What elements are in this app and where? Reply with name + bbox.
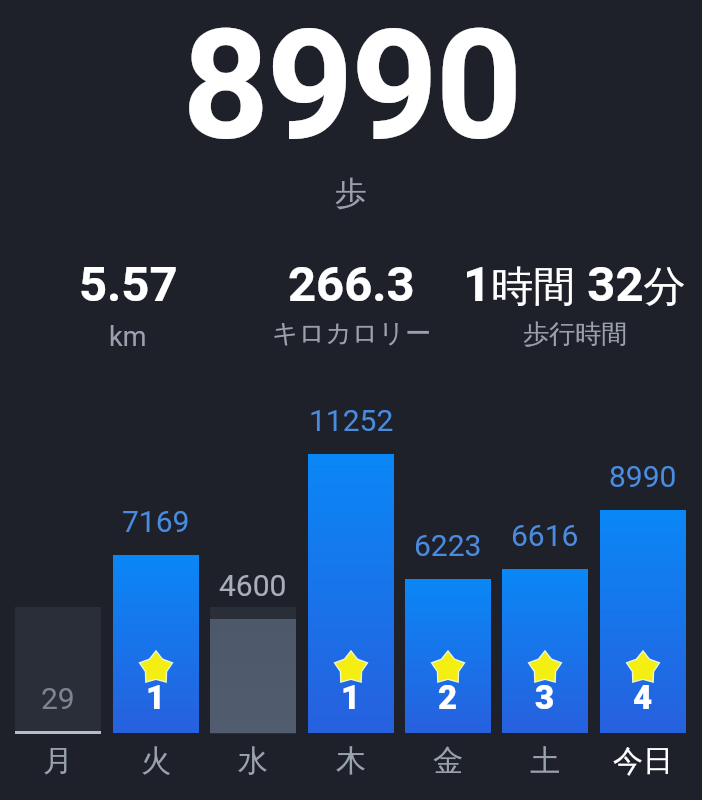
button[interactable] (600, 510, 686, 733)
staticText: 歩行時間 (523, 318, 627, 351)
staticText: 29 (41, 681, 75, 716)
button[interactable] (502, 569, 588, 733)
staticText: 8990 (182, 0, 520, 167)
button[interactable] (210, 607, 296, 734)
button[interactable]: 月 (15, 742, 101, 788)
button[interactable]: 5.57 (16, 256, 240, 314)
staticText: 2 (438, 678, 458, 717)
button[interactable]: 火 (113, 742, 199, 788)
staticText: 8990 (609, 459, 677, 494)
staticText: 7169 (122, 504, 190, 539)
staticText: 1時間 32分 (463, 256, 686, 314)
staticText: 1 (146, 678, 166, 717)
staticText: キロカロリー (272, 317, 432, 350)
button[interactable]: 8990 (0, 0, 702, 167)
staticText: 水 (238, 742, 268, 780)
staticText: 6223 (414, 528, 482, 563)
staticText: 3 (535, 678, 555, 717)
button[interactable]: 土 (502, 742, 588, 788)
staticText: 火 (141, 742, 171, 780)
staticText: 11252 (309, 403, 394, 438)
button[interactable]: 266.3 (240, 256, 463, 314)
staticText: km (109, 321, 147, 353)
staticText: 6616 (511, 518, 579, 553)
button[interactable]: 1時間 32分 (463, 256, 686, 314)
button[interactable]: 金 (405, 742, 491, 788)
button[interactable] (113, 555, 199, 733)
staticText: 266.3 (288, 256, 415, 313)
staticText: 金 (433, 742, 463, 780)
staticText: 4600 (219, 568, 287, 603)
button[interactable] (308, 454, 394, 733)
button[interactable] (15, 607, 101, 734)
staticText: 今日 (613, 742, 673, 780)
staticText: 土 (530, 742, 560, 780)
staticText: 4 (633, 678, 653, 717)
staticText: 1 (341, 678, 361, 717)
staticText: 木 (336, 742, 366, 780)
button[interactable]: 今日 (600, 742, 686, 788)
button[interactable] (405, 579, 491, 733)
button[interactable]: 水 (210, 742, 296, 788)
button[interactable]: 木 (308, 742, 394, 788)
staticText: 歩 (335, 173, 367, 213)
staticText: 月 (43, 742, 73, 780)
staticText: 5.57 (79, 256, 178, 313)
